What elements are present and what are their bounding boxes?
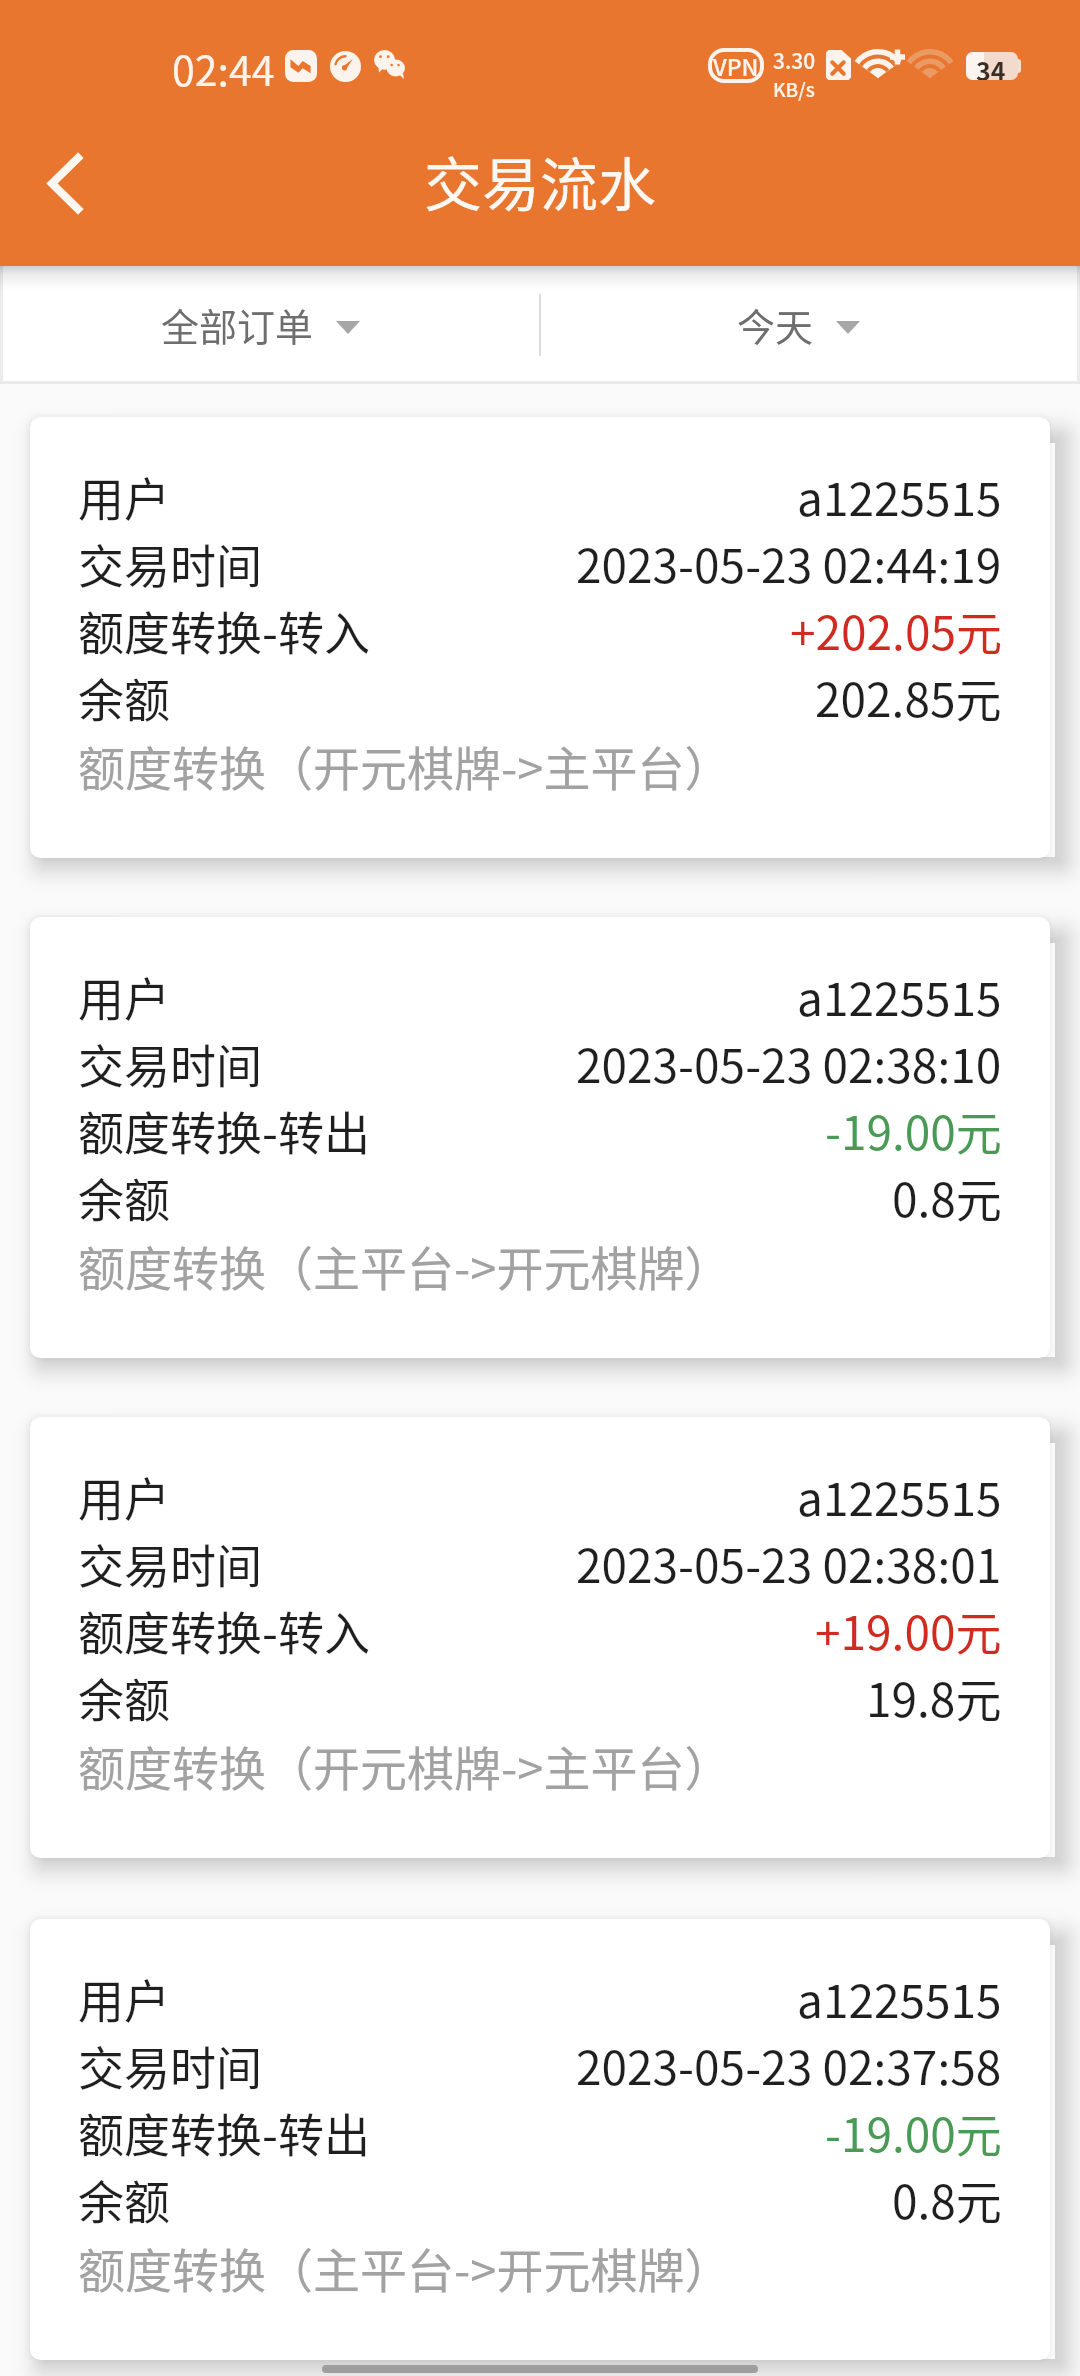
button[interactable]: 用户: [30, 417, 1050, 858]
staticText: 3.30: [773, 45, 816, 75]
button[interactable]: 用户: [30, 1417, 1050, 1858]
staticText: KB/s: [773, 75, 815, 103]
staticText: 额度转换（主平台->开元棋牌）: [78, 1231, 732, 1299]
staticText: 额度转换-转出: [78, 2099, 370, 2166]
staticText: 余额: [78, 1164, 170, 1231]
staticText: -19.00元: [825, 1097, 1002, 1164]
staticText: 0.8元: [892, 1164, 1002, 1231]
staticText: 用户: [78, 1965, 170, 2032]
staticText: 用户: [78, 963, 170, 1030]
staticText: 2023-05-23 02:44:19: [576, 530, 1002, 597]
button[interactable]: Back: [13, 131, 117, 235]
staticText: 34: [976, 52, 1006, 80]
staticText: 余额: [78, 2166, 170, 2233]
button[interactable]: 今天: [541, 266, 1080, 384]
staticText: 交易时间: [78, 530, 262, 597]
staticText: 0.8元: [892, 2166, 1002, 2233]
button[interactable]: 全部订单: [0, 266, 539, 384]
staticText: 202.85元: [815, 664, 1002, 731]
staticText: 02:44: [172, 38, 275, 97]
staticText: a1225515: [797, 1965, 1002, 2032]
staticText: 额度转换（开元棋牌->主平台）: [78, 1731, 732, 1799]
staticText: a1225515: [797, 963, 1002, 1030]
staticText: 19.8元: [866, 1664, 1002, 1731]
staticText: 交易流水: [424, 139, 657, 223]
staticText: -19.00元: [825, 2099, 1002, 2166]
staticText: a1225515: [797, 463, 1002, 530]
staticText: 2023-05-23 02:38:10: [576, 1030, 1002, 1097]
button[interactable]: 用户: [30, 917, 1050, 1358]
staticText: VPN: [713, 49, 759, 82]
staticText: 用户: [78, 1463, 170, 1530]
staticText: a1225515: [797, 1463, 1002, 1530]
staticText: +19.00元: [815, 1597, 1002, 1664]
button[interactable]: 用户: [30, 1919, 1050, 2360]
staticText: 今天: [737, 297, 814, 352]
staticText: 交易时间: [78, 1030, 262, 1097]
staticText: 额度转换-转出: [78, 1097, 370, 1164]
staticText: 交易时间: [78, 2032, 262, 2099]
staticText: +202.05元: [790, 597, 1002, 664]
staticText: 余额: [78, 664, 170, 731]
staticText: 全部订单: [161, 297, 314, 352]
staticText: 额度转换-转入: [78, 1597, 370, 1664]
staticText: 额度转换（开元棋牌->主平台）: [78, 731, 732, 799]
staticText: 余额: [78, 1664, 170, 1731]
staticText: 额度转换（主平台->开元棋牌）: [78, 2233, 732, 2301]
staticText: 用户: [78, 463, 170, 530]
staticText: 2023-05-23 02:38:01: [576, 1530, 1002, 1597]
staticText: 额度转换-转入: [78, 597, 370, 664]
staticText: 2023-05-23 02:37:58: [576, 2032, 1002, 2099]
staticText: 交易时间: [78, 1530, 262, 1597]
